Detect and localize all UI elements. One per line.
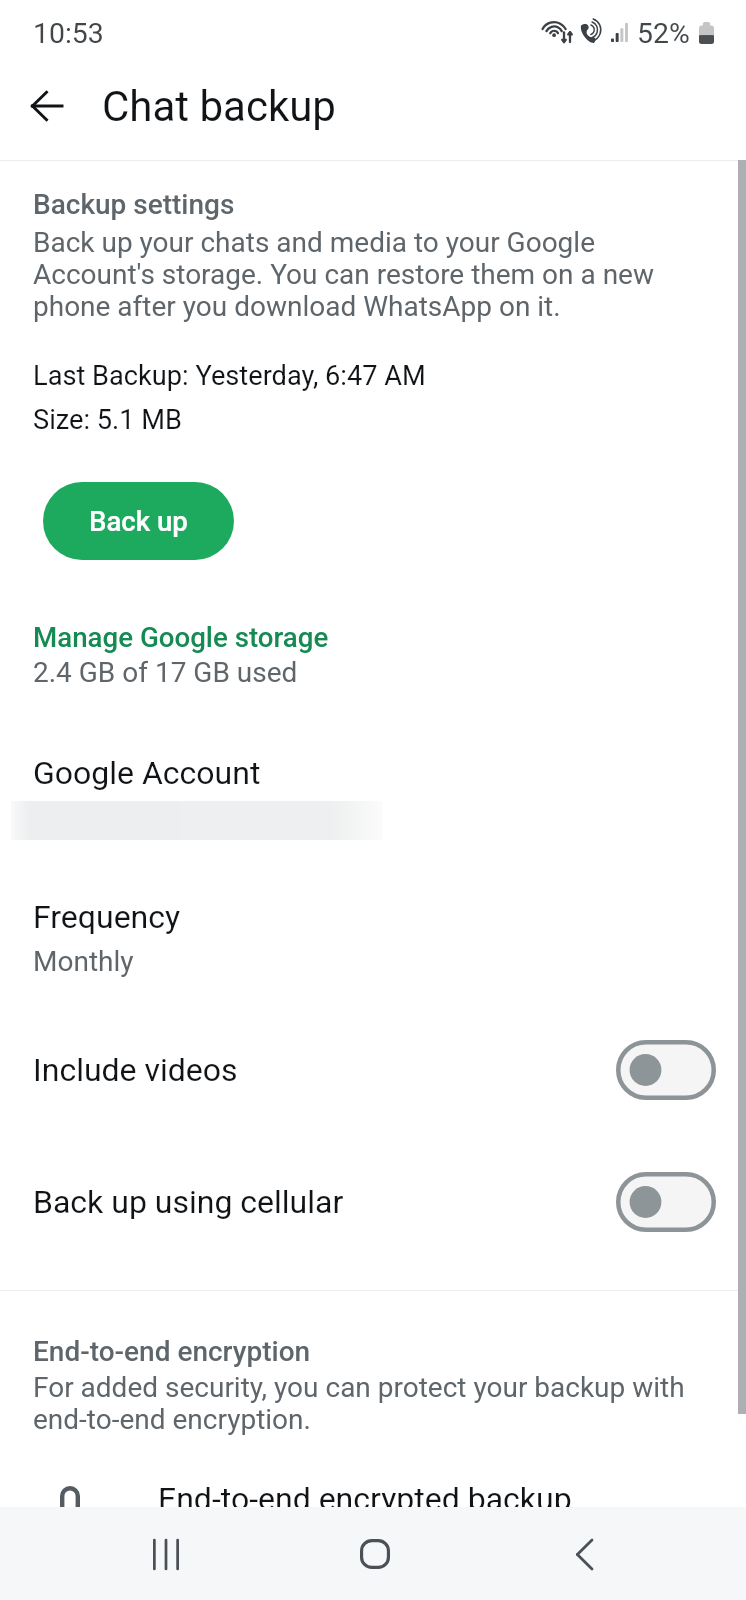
staticText: 10:53 [33,17,104,50]
staticText: Frequency [33,898,181,936]
staticText: Size: 5.1 MB [33,404,182,436]
button[interactable]: Recent apps [120,1508,212,1600]
staticText: Chat backup [102,82,336,131]
staticText: 52% [637,17,690,50]
staticText: Last Backup: Yesterday, 6:47 AM [33,360,426,392]
button[interactable]: Manage Google storage [0,615,746,701]
button[interactable]: End-to-end encrypted backup [0,1462,746,1558]
button[interactable]: Navigate up [4,64,88,148]
staticText: 2.4 GB of 17 GB used [33,656,298,689]
button[interactable]: Frequency [0,892,746,990]
staticText: End-to-end encryption [33,1335,311,1368]
staticText: Back up using cellular [33,1183,616,1221]
button[interactable]: Include videos [0,1026,746,1114]
button[interactable]: Google Account [0,748,746,854]
staticText: Manage Google storage [33,621,329,653]
button[interactable]: Home [329,1508,421,1600]
staticText: Google Account [33,754,261,792]
staticText: Backup settings [33,188,235,221]
button[interactable]: Back up [43,482,234,560]
staticText: For added security, you can protect your… [33,1371,705,1436]
staticText: Monthly [33,945,134,978]
staticText: End-to-end encrypted backup [158,1480,572,1518]
button[interactable]: Back up using cellular [0,1158,746,1246]
staticText: Back up your chats and media to your Goo… [33,226,693,323]
staticText: Back up [89,505,188,537]
button[interactable]: Back [538,1508,630,1600]
staticText: Include videos [33,1051,616,1089]
